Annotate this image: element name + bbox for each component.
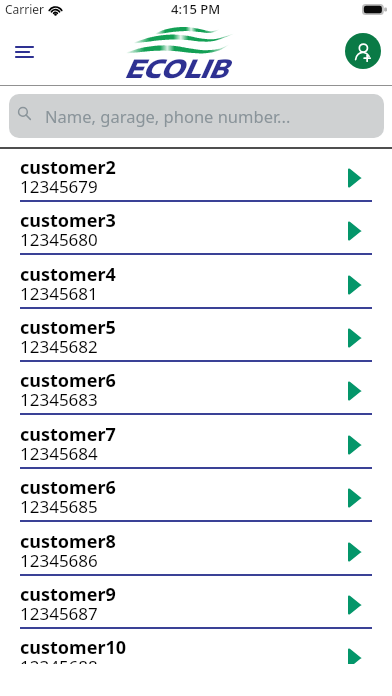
staticText: customer3 (20, 208, 116, 233)
button[interactable]: customer4 (0, 256, 392, 309)
other: Open customer (348, 435, 362, 455)
other: Open customer (348, 648, 362, 664)
other: Open customer (348, 328, 362, 348)
staticText: 12345682 (20, 335, 98, 358)
button[interactable]: customer9 (0, 576, 392, 629)
other: Open customer (348, 168, 362, 188)
other: Open customer (348, 542, 362, 562)
other: Open customer (348, 488, 362, 508)
staticText: 12345683 (20, 388, 98, 411)
staticText: customer10 (20, 635, 127, 660)
other: Open customer (348, 381, 362, 401)
staticText: 12345681 (20, 282, 98, 305)
button[interactable]: customer8 (0, 523, 392, 576)
button[interactable]: Add new customer (345, 33, 381, 69)
staticText: 12345685 (20, 495, 98, 518)
staticText: customer2 (20, 155, 116, 180)
staticText: customer7 (20, 422, 116, 447)
other: Open customer (348, 595, 362, 615)
staticText: 12345680 (20, 228, 98, 251)
button[interactable]: customer10 (0, 629, 392, 664)
button[interactable]: customer2 (0, 149, 392, 202)
staticText: Name, garage, phone number... (45, 105, 291, 127)
staticText: 12345686 (20, 549, 98, 572)
other: Open customer (348, 275, 362, 295)
button[interactable]: customer5 (0, 309, 392, 362)
button[interactable]: customer6 (0, 469, 392, 522)
staticText: 12345679 (20, 175, 98, 198)
staticText: customer4 (20, 262, 116, 287)
staticText: Carrier (5, 1, 45, 17)
other: Open customer (348, 221, 362, 241)
staticText: customer9 (20, 582, 116, 607)
staticText: ECOLIB (124, 52, 227, 83)
button[interactable]: Name, garage, phone number... (9, 94, 384, 138)
staticText: 12345688 (20, 655, 98, 664)
button[interactable]: customer7 (0, 416, 392, 469)
button[interactable]: customer3 (0, 202, 392, 255)
staticText: 12345684 (20, 442, 98, 465)
staticText: customer8 (20, 529, 116, 554)
staticText: customer6 (20, 368, 116, 393)
staticText: 12345687 (20, 602, 98, 625)
button[interactable]: Open navigation menu (2, 29, 47, 74)
staticText: customer6 (20, 475, 116, 500)
staticText: 4:15 PM (171, 0, 221, 18)
staticText: customer5 (20, 315, 116, 340)
button[interactable]: customer6 (0, 362, 392, 415)
